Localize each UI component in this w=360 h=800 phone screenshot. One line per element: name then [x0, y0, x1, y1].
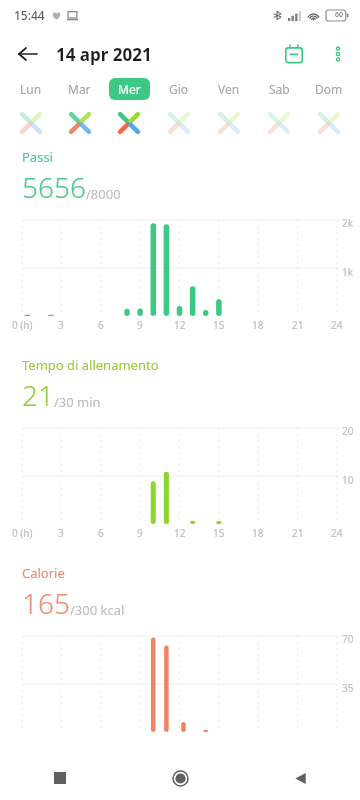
staticText: 9 — [137, 318, 143, 332]
button[interactable]: Recent apps — [0, 756, 120, 800]
staticText: 0 (h) — [12, 526, 33, 540]
button[interactable]: More options — [316, 32, 360, 76]
staticText: 10 — [342, 473, 354, 487]
staticText: Calorie — [22, 564, 65, 582]
staticText: 3 — [58, 526, 64, 540]
staticText: 0 (h) — [12, 318, 33, 332]
button[interactable]: Mer — [104, 78, 154, 136]
staticText: 70 — [342, 632, 354, 646]
staticText: 12 — [174, 318, 186, 332]
staticText: 1k — [342, 265, 354, 279]
staticText: 3 — [58, 318, 64, 332]
staticText: /30 min — [54, 393, 101, 411]
staticText: /8000 — [86, 185, 121, 203]
staticText: 15:44 — [14, 7, 45, 23]
staticText: 15 — [213, 318, 225, 332]
button[interactable]: Lun — [6, 78, 55, 136]
staticText: Gio — [169, 81, 189, 97]
button[interactable]: Ven — [204, 78, 254, 136]
staticText: 9 — [137, 526, 143, 540]
staticText: 18 — [252, 318, 264, 332]
staticText: 2k — [342, 216, 354, 230]
staticText: 18 — [252, 526, 264, 540]
staticText: 15 — [213, 526, 225, 540]
staticText: Dom — [315, 81, 343, 97]
staticText: 20 — [342, 424, 354, 438]
staticText: 165 — [22, 584, 70, 622]
staticText: 14 apr 2021 — [56, 43, 152, 66]
staticText: 60 — [335, 10, 344, 20]
staticText: Sab — [269, 81, 290, 97]
staticText: Lun — [20, 81, 42, 97]
staticText: 6 — [98, 526, 104, 540]
staticText: 24 — [331, 318, 343, 332]
staticText: 21 — [292, 318, 304, 332]
staticText: Mer — [118, 81, 141, 97]
staticText: 12 — [174, 526, 186, 540]
staticText: Passi — [22, 148, 53, 166]
staticText: Ven — [218, 81, 240, 97]
button[interactable]: Calendar — [272, 32, 316, 76]
button[interactable]: Back — [240, 756, 360, 800]
staticText: 21 — [22, 376, 54, 414]
button[interactable]: Sab — [254, 78, 304, 136]
staticText: 6 — [98, 318, 104, 332]
staticText: 21 — [292, 526, 304, 540]
staticText: Tempo di allenamento — [22, 356, 159, 374]
button[interactable]: Dom — [304, 78, 354, 136]
staticText: Mar — [68, 81, 91, 97]
staticText: 5656 — [22, 168, 86, 206]
staticText: /300 kcal — [70, 601, 125, 619]
button[interactable]: Gio — [154, 78, 204, 136]
button[interactable]: Back — [8, 34, 48, 74]
staticText: 24 — [331, 526, 343, 540]
staticText: 35 — [342, 681, 354, 695]
button[interactable]: Home — [120, 756, 240, 800]
button[interactable]: Mar — [55, 78, 104, 136]
